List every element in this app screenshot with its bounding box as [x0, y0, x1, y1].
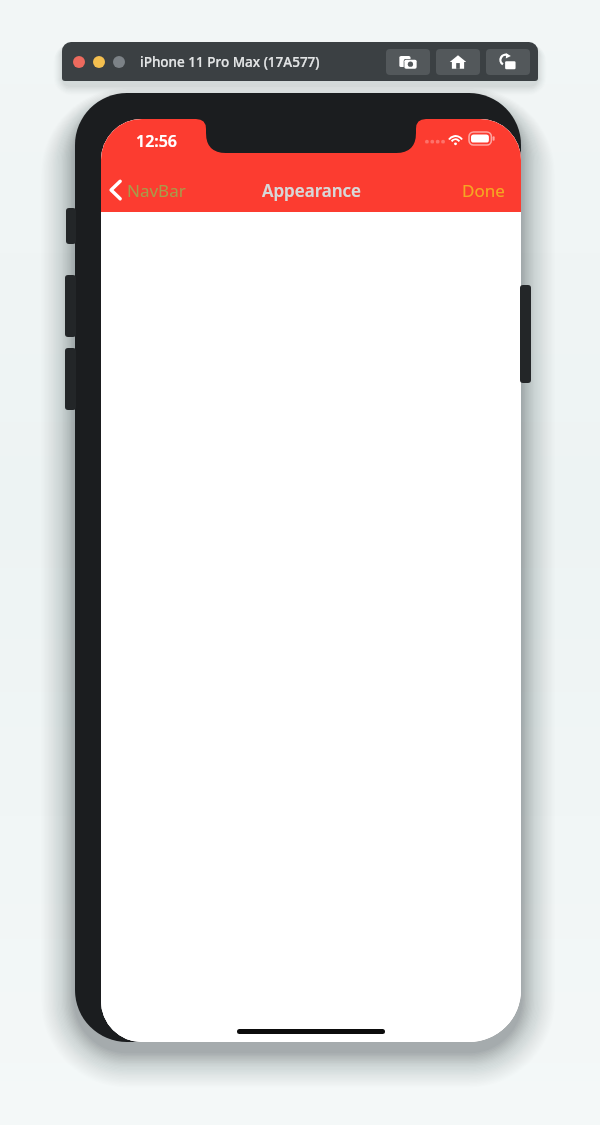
staticText: 12:56 — [136, 130, 178, 152]
button[interactable]: NavBar — [109, 168, 186, 212]
button[interactable]: Side button — [520, 285, 531, 383]
staticText: Done — [462, 179, 505, 202]
button[interactable]: Rotate — [486, 49, 530, 75]
button[interactable]: Close — [73, 56, 85, 68]
staticText: NavBar — [127, 179, 186, 202]
staticText: iPhone 11 Pro Max (17A577) — [140, 53, 320, 71]
button[interactable]: Done — [462, 168, 505, 212]
button[interactable]: Ringer switch — [66, 208, 76, 244]
button[interactable]: Volume down — [65, 348, 76, 410]
button[interactable]: Screenshot — [386, 49, 430, 75]
button[interactable]: Volume up — [65, 275, 76, 337]
staticText: Appearance — [262, 179, 361, 202]
button[interactable]: Zoom — [113, 56, 125, 68]
button[interactable]: Minimize — [93, 56, 105, 68]
button[interactable]: Home — [436, 49, 480, 75]
